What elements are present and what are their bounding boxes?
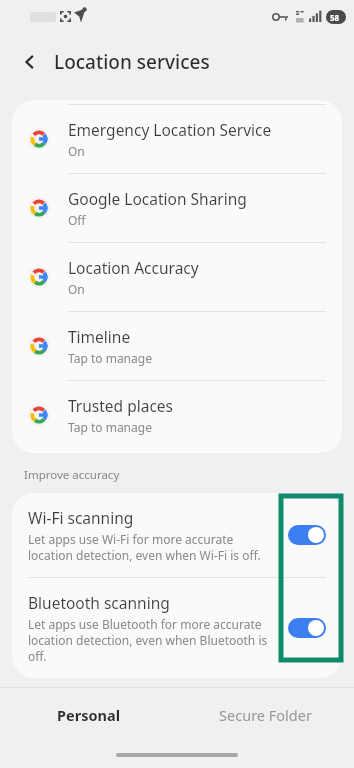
button[interactable]: Emergency Location Service	[12, 105, 342, 173]
button[interactable]: Secure Folder	[177, 688, 354, 742]
staticText: Google Location Sharing	[68, 188, 247, 209]
button[interactable]: Trusted places	[12, 381, 342, 449]
staticText: Improve accuracy	[24, 467, 120, 483]
button[interactable]: Back	[14, 46, 46, 78]
staticText: Timeline	[68, 326, 131, 347]
staticText: Location Accuracy	[68, 257, 199, 278]
staticText: Bluetooth scanning	[28, 592, 170, 613]
staticText: On	[68, 281, 85, 297]
staticText: 58	[330, 12, 340, 23]
button[interactable]: Location Accuracy	[12, 243, 342, 311]
staticText: Personal	[57, 705, 120, 725]
staticText: Tap to manage	[68, 350, 152, 366]
staticText: Secure Folder	[219, 705, 312, 725]
button[interactable]: Bluetooth scanning	[12, 578, 342, 678]
button[interactable]: Toggle	[288, 618, 326, 638]
staticText: Emergency Location Service	[68, 119, 272, 140]
staticText: Let apps use Wi-Fi for more accurate loc…	[28, 531, 280, 563]
staticText: Wi-Fi scanning	[28, 507, 134, 528]
button[interactable]: Personal	[0, 688, 177, 742]
staticText: Location services	[54, 49, 210, 75]
staticText: Let apps use Bluetooth for more accurate…	[28, 616, 280, 664]
staticText: Tap to manage	[68, 419, 152, 435]
button[interactable]: Timeline	[12, 312, 342, 380]
staticText: Trusted places	[68, 395, 173, 416]
button[interactable]: Wi-Fi scanning	[12, 493, 342, 577]
staticText: On	[68, 143, 85, 159]
button[interactable]: Toggle	[288, 525, 326, 545]
button[interactable]: Google Location Sharing	[12, 174, 342, 242]
staticText: Off	[68, 212, 86, 228]
